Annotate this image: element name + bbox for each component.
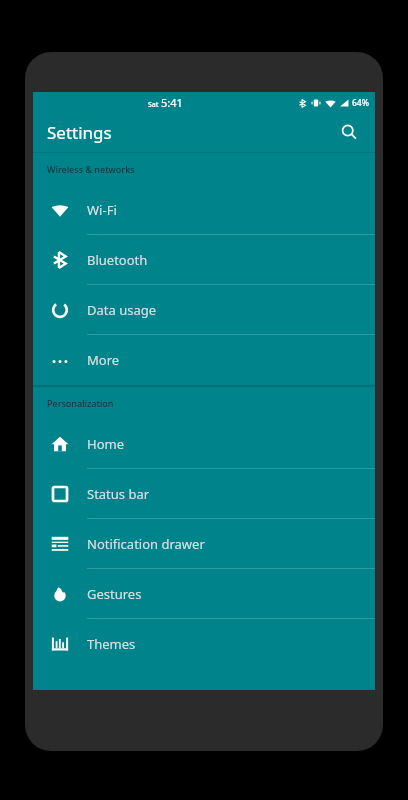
staticText: Wi-Fi (87, 201, 117, 219)
button[interactable]: Home (33, 419, 375, 469)
staticText: More (87, 351, 120, 369)
button[interactable]: Search (331, 114, 367, 150)
button[interactable]: Data usage (33, 285, 375, 335)
button[interactable]: Gestures (33, 569, 375, 619)
staticText: Gestures (87, 585, 142, 603)
staticText: Personalization (47, 397, 114, 409)
staticText: 5:41 (161, 95, 183, 110)
button[interactable]: Wi-Fi (33, 185, 375, 235)
staticText: Sat (148, 100, 159, 110)
button[interactable]: More (33, 335, 375, 385)
staticText: 64% (352, 97, 369, 109)
button[interactable]: Notification drawer (33, 519, 375, 569)
button[interactable]: Bluetooth (33, 235, 375, 285)
staticText: Themes (87, 635, 136, 653)
staticText: Notification drawer (87, 535, 205, 553)
staticText: Data usage (87, 301, 157, 319)
staticText: Wireless & networks (47, 163, 135, 175)
button[interactable]: Themes (33, 619, 375, 669)
staticText: Settings (47, 121, 112, 144)
button[interactable]: Status bar (33, 469, 375, 519)
staticText: Bluetooth (87, 251, 148, 269)
staticText: Home (87, 435, 124, 453)
staticText: Status bar (87, 485, 150, 503)
